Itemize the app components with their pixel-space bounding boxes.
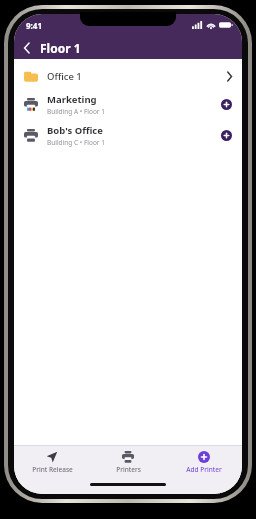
staticText: Bob's Office [47, 124, 103, 137]
button[interactable]: Back [14, 36, 40, 59]
button[interactable]: Printers [90, 446, 166, 479]
button[interactable]: Add Marketing [221, 99, 232, 110]
button[interactable]: Marketing [14, 89, 242, 120]
staticText: Building A • Floor 1 [47, 107, 105, 116]
staticText: Printers [116, 465, 141, 474]
staticText: Add Printer [186, 465, 222, 474]
button[interactable]: Office 1 [14, 63, 242, 89]
button[interactable]: Add Bob's Office [221, 130, 232, 141]
staticText: 9:41 [26, 20, 42, 31]
staticText: Office 1 [47, 70, 82, 83]
button[interactable]: Bob's Office [14, 120, 242, 151]
button[interactable]: Add Printer [166, 446, 242, 479]
staticText: Floor 1 [40, 40, 81, 56]
button[interactable]: Print Release [14, 446, 90, 479]
staticText: Marketing [47, 93, 97, 106]
staticText: Building C • Floor 1 [47, 138, 105, 147]
staticText: Print Release [32, 465, 73, 474]
